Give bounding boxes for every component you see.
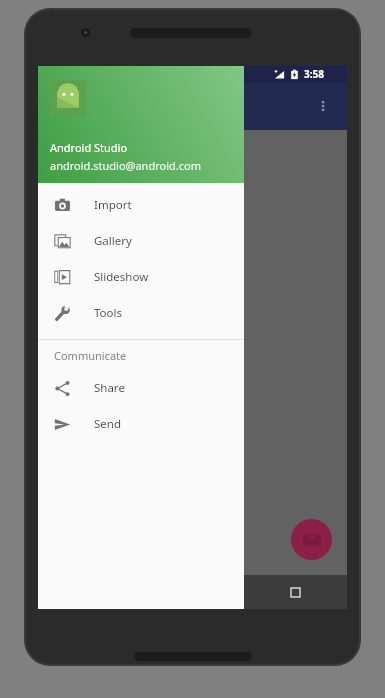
staticText: Tools	[94, 305, 122, 321]
button[interactable]: Tools	[38, 295, 244, 331]
button[interactable]: Send	[38, 406, 244, 442]
staticText: Send	[94, 416, 121, 432]
staticText: Slideshow	[94, 269, 149, 285]
staticText: 3:58	[304, 67, 324, 81]
staticText: Android Studio	[50, 140, 128, 155]
button[interactable]: Recents	[244, 575, 347, 609]
staticText: Communicate	[54, 348, 127, 363]
button[interactable]: Android Studio	[38, 66, 244, 183]
button[interactable]: Import	[38, 187, 244, 223]
staticText: Share	[94, 380, 125, 396]
staticText: android.studio@android.com	[50, 158, 201, 173]
button[interactable]: Share	[38, 370, 244, 406]
staticText: Import	[94, 197, 132, 213]
button[interactable]: Compose message	[291, 519, 332, 560]
button[interactable]: More options	[305, 88, 341, 124]
button[interactable]: Slideshow	[38, 259, 244, 295]
button[interactable]: Gallery	[38, 223, 244, 259]
staticText: Gallery	[94, 233, 132, 249]
